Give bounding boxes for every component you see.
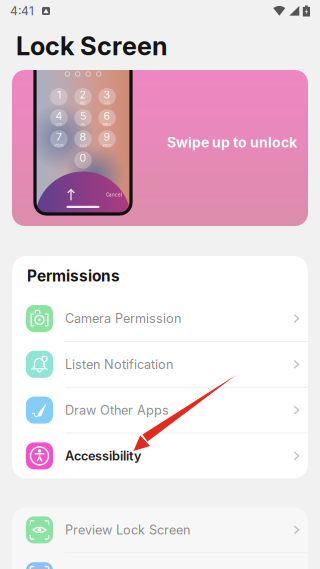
button[interactable]: Camera Permission xyxy=(12,296,308,341)
staticText: Camera Permission xyxy=(65,311,181,326)
staticText: 4 xyxy=(55,109,62,122)
button[interactable]: Change Wallpaper xyxy=(12,553,308,569)
staticText: Permissions xyxy=(27,267,120,285)
staticText: 1 xyxy=(57,88,61,101)
staticText xyxy=(82,164,83,169)
button[interactable]: Accessibility xyxy=(12,433,308,478)
staticText: MNO xyxy=(103,122,112,126)
staticText: Cancel xyxy=(106,192,122,198)
staticText: ABC xyxy=(79,101,86,105)
staticText: GHI xyxy=(55,122,62,126)
staticText: DEF xyxy=(104,101,111,105)
staticText: Lock Screen xyxy=(16,31,168,61)
button[interactable]: Preview Lock Screen xyxy=(12,507,308,552)
staticText: 5 xyxy=(80,109,86,122)
staticText: 8 xyxy=(79,130,86,143)
staticText: PQRS xyxy=(54,143,63,147)
staticText: 2 xyxy=(79,88,86,101)
staticText: Swipe up to unlock xyxy=(167,134,297,151)
staticText: 4:41 xyxy=(10,4,34,18)
staticText: 7 xyxy=(56,130,62,143)
staticText: Accessibility xyxy=(65,448,141,463)
staticText: TUV xyxy=(79,143,86,147)
staticText: JKL xyxy=(80,122,86,126)
staticText: WXYZ xyxy=(103,143,112,147)
button[interactable]: Draw Other Apps xyxy=(12,388,308,433)
staticText: Listen Notification xyxy=(65,357,173,372)
staticText: Draw Other Apps xyxy=(65,402,169,418)
staticText: Preview Lock Screen xyxy=(65,522,190,537)
button[interactable]: Listen Notification xyxy=(12,342,308,387)
staticText: 0 xyxy=(79,151,86,164)
staticText: 3 xyxy=(104,88,111,101)
staticText: 9 xyxy=(104,130,111,143)
staticText: 6 xyxy=(104,109,111,122)
